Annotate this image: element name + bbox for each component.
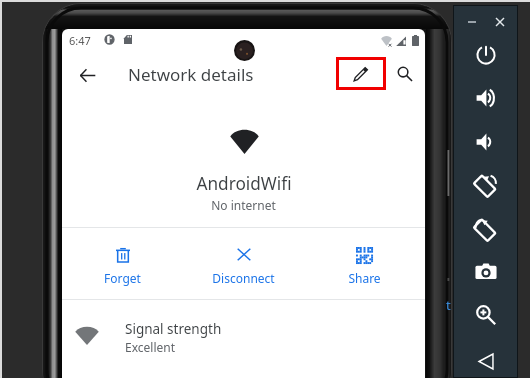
button[interactable]: Screenshot: [471, 257, 501, 287]
staticText: Signal strength: [125, 320, 222, 338]
button[interactable]: Forget: [62, 228, 183, 299]
button[interactable]: Back: [471, 346, 501, 376]
button[interactable]: Rotate right: [471, 214, 501, 244]
button[interactable]: Close: [489, 11, 511, 33]
staticText: Disconnect: [212, 270, 275, 286]
staticText: Forget: [104, 270, 141, 286]
button[interactable]: Share: [304, 228, 425, 299]
staticText: No internet: [211, 197, 276, 213]
button[interactable]: Search: [389, 58, 420, 89]
button[interactable]: Volume up: [471, 83, 501, 113]
staticText: 6:47: [69, 33, 91, 48]
staticText: Network details: [128, 63, 254, 86]
staticText: t: [446, 296, 451, 314]
button[interactable]: Power: [471, 40, 501, 70]
button[interactable]: Signal strength: [62, 300, 425, 378]
button[interactable]: Minimize: [461, 11, 483, 33]
button[interactable]: Rotate left: [471, 170, 501, 200]
button[interactable]: Edit: [336, 57, 386, 90]
button[interactable]: Zoom: [471, 300, 501, 330]
button[interactable]: Back: [71, 59, 103, 91]
button[interactable]: Disconnect: [183, 228, 304, 299]
staticText: Excellent: [125, 339, 176, 355]
staticText: Share: [348, 270, 381, 286]
button[interactable]: Volume down: [471, 127, 501, 157]
staticText: AndroidWifi: [196, 172, 292, 195]
